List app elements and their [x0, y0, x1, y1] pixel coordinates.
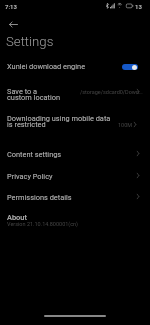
button[interactable]: Permissions details: [0, 186, 150, 207]
button[interactable]: Content settings: [0, 143, 150, 164]
staticText: Downloading using mobile data is restric…: [7, 114, 111, 129]
staticText: Privacy Policy: [7, 172, 53, 181]
button[interactable]: Back: [1, 15, 26, 34]
button[interactable]: Privacy Policy: [0, 165, 150, 186]
staticText: Content settings: [7, 150, 62, 159]
staticText: /storage/sdcard0/Down…: [80, 89, 143, 95]
button[interactable]: Downloading using mobile data is restric…: [0, 109, 150, 133]
staticText: Settings: [6, 34, 54, 49]
staticText: About: [7, 213, 27, 222]
staticText: 13: [135, 3, 142, 10]
staticText: Permissions details: [7, 193, 72, 202]
staticText: Xunlei download engine: [7, 62, 86, 71]
button[interactable]: About: [0, 208, 150, 232]
staticText: Version 21.10.14.800001(cn): [7, 221, 79, 227]
staticText: 100M: [118, 122, 133, 128]
button[interactable]: Xunlei download engine: [0, 56, 150, 77]
staticText: Save to a custom location: [7, 87, 61, 102]
button[interactable]: Save to a custom location: [0, 81, 150, 105]
staticText: 7:13: [5, 3, 17, 10]
